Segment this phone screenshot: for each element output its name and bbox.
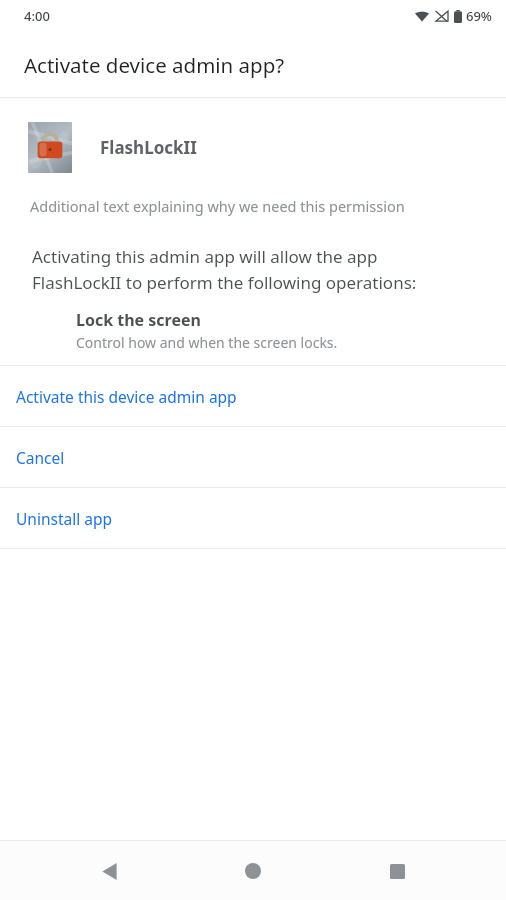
button[interactable]: Home [232, 850, 274, 892]
staticText: Activate this device admin app [16, 386, 237, 407]
staticText: 69% [466, 7, 492, 25]
button[interactable]: Uninstall app [0, 488, 506, 548]
staticText: FlashLockII [100, 136, 197, 159]
button[interactable]: Recent apps [376, 850, 418, 892]
staticText: 4:00 [24, 7, 50, 25]
staticText: Control how and when the screen locks. [76, 333, 338, 352]
staticText: Cancel [16, 447, 65, 468]
staticText: Uninstall app [16, 508, 112, 529]
staticText: Lock the screen [76, 309, 201, 331]
button[interactable]: Activate this device admin app [0, 366, 506, 426]
staticText: Activate device admin app? [24, 51, 285, 79]
button[interactable]: Cancel [0, 427, 506, 487]
staticText: Activating this admin app will allow the… [32, 245, 454, 294]
button[interactable]: Back [88, 850, 130, 892]
staticText: Additional text explaining why we need t… [30, 196, 405, 216]
